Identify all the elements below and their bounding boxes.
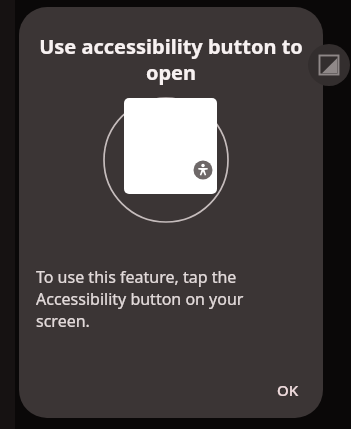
staticText: To use this feature, tap the Accessibili… [36, 266, 299, 332]
staticText: Use accessibility button to open [35, 33, 307, 86]
staticText: OK [277, 380, 299, 400]
button[interactable]: OK [263, 372, 313, 408]
button[interactable]: Resize window [308, 44, 350, 86]
